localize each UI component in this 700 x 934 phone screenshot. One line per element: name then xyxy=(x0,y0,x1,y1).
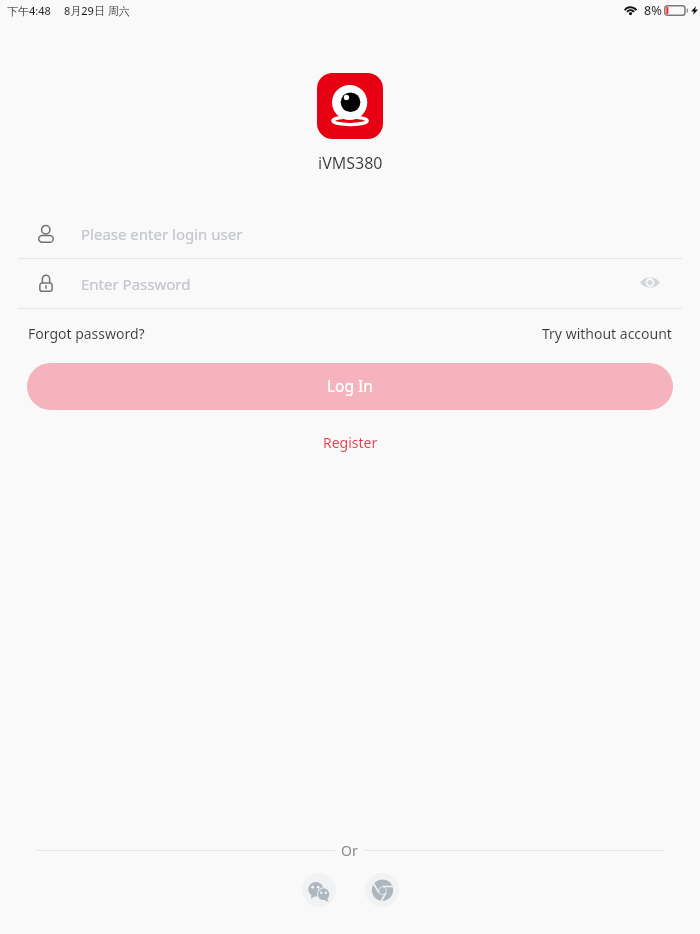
staticText: Or xyxy=(341,841,358,860)
staticText: 8月29日 周六 xyxy=(64,3,130,18)
button[interactable]: Enter Password xyxy=(0,259,700,308)
staticText: 下午4:48 xyxy=(7,3,51,18)
staticText: Register xyxy=(323,433,378,452)
staticText: Try without account xyxy=(542,324,672,343)
button[interactable]: Register xyxy=(313,429,388,456)
staticText: Enter Password xyxy=(81,274,191,294)
button[interactable]: Sign in with browser xyxy=(365,873,399,907)
staticText: Forgot password? xyxy=(28,324,145,343)
staticText: Please enter login user xyxy=(81,224,243,244)
button[interactable]: Sign in with WeChat xyxy=(302,873,336,907)
staticText: iVMS380 xyxy=(318,152,383,174)
button[interactable]: Try without account xyxy=(542,324,672,343)
staticText: Log In xyxy=(327,375,373,396)
button[interactable]: Show password xyxy=(635,267,665,297)
staticText: 8% xyxy=(644,2,662,19)
button[interactable]: Forgot password? xyxy=(28,324,145,343)
button[interactable]: Log In xyxy=(27,363,673,410)
button[interactable]: Please enter login user xyxy=(0,209,700,258)
